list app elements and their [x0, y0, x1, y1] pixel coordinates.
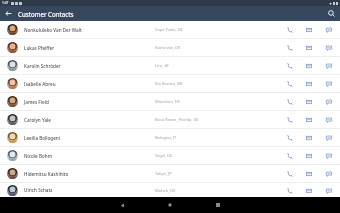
button[interactable]: Message: [323, 96, 334, 107]
button[interactable]: Search: [326, 8, 337, 19]
button[interactable]: Hidemitsu Kashihito: [0, 165, 340, 183]
button[interactable]: Call: [283, 168, 294, 179]
button[interactable]: Back: [111, 197, 133, 213]
staticText: Rio Branco, BR: [155, 81, 183, 86]
button[interactable]: Isabelle Abreu: [0, 75, 340, 93]
button[interactable]: Email: [303, 168, 314, 179]
staticText: Boca Raton, Florida, US: [155, 117, 199, 122]
button[interactable]: Call: [283, 60, 294, 71]
button[interactable]: Leeilla Bollogeni: [0, 129, 340, 147]
button[interactable]: Email: [303, 132, 314, 143]
button[interactable]: Lukas Pfeiffer: [0, 39, 340, 57]
button[interactable]: Email: [303, 96, 314, 107]
button[interactable]: Email: [303, 114, 314, 125]
staticText: Karlsruhe, DE: [155, 45, 181, 50]
staticText: Customer Contacts: [18, 10, 74, 18]
button[interactable]: Message: [323, 185, 334, 196]
staticText: Tokyo, JP: [155, 171, 172, 176]
staticText: Bologna, IT: [155, 135, 177, 140]
button[interactable]: Nicole Bohm: [0, 147, 340, 165]
button[interactable]: Call: [283, 24, 294, 35]
staticText: James Field: [24, 99, 49, 105]
button[interactable]: Email: [303, 150, 314, 161]
button[interactable]: Carolyn Yale: [0, 111, 340, 129]
staticText: Isabelle Abreu: [24, 81, 56, 87]
staticText: Leeilla Bollogeni: [24, 135, 60, 141]
staticText: Malsch, DE: [155, 188, 176, 193]
button[interactable]: Message: [323, 132, 334, 143]
button[interactable]: Message: [323, 168, 334, 179]
staticText: 1:47: [2, 1, 9, 5]
button[interactable]: Message: [323, 42, 334, 53]
button[interactable]: Call: [283, 78, 294, 89]
button[interactable]: Call: [283, 96, 294, 107]
staticText: Karolin Schröder: [24, 63, 61, 69]
button[interactable]: Message: [323, 114, 334, 125]
staticText: Lukas Pfeiffer: [24, 45, 55, 51]
button[interactable]: Call: [283, 150, 294, 161]
button[interactable]: Email: [303, 185, 314, 196]
button[interactable]: Email: [303, 60, 314, 71]
button[interactable]: Karolin Schröder: [0, 57, 340, 75]
button[interactable]: Call: [283, 132, 294, 143]
button[interactable]: Home: [159, 197, 181, 213]
staticText: Linz, AT: [155, 63, 170, 68]
button[interactable]: Message: [323, 78, 334, 89]
button[interactable]: Message: [323, 150, 334, 161]
staticText: München, DE: [155, 99, 180, 104]
button[interactable]: Call: [283, 42, 294, 53]
staticText: Tegel, DE: [155, 153, 173, 158]
staticText: Hidemitsu Kashihito: [24, 171, 69, 177]
button[interactable]: Message: [323, 24, 334, 35]
button[interactable]: Ulrich Schatz: [0, 183, 340, 197]
button[interactable]: Back: [3, 8, 14, 19]
button[interactable]: Nonkululeko Van Der Walt: [0, 21, 340, 39]
button[interactable]: Email: [303, 78, 314, 89]
staticText: Nicole Bohm: [24, 153, 52, 159]
button[interactable]: Email: [303, 24, 314, 35]
staticText: Ulrich Schatz: [24, 187, 53, 193]
button[interactable]: Email: [303, 42, 314, 53]
button[interactable]: Call: [283, 185, 294, 196]
button[interactable]: James Field: [0, 93, 340, 111]
button[interactable]: Recent apps: [207, 197, 229, 213]
button[interactable]: Message: [323, 60, 334, 71]
staticText: Nonkululeko Van Der Walt: [24, 27, 82, 33]
button[interactable]: Call: [283, 114, 294, 125]
staticText: Carolyn Yale: [24, 117, 51, 123]
staticText: Cape Town, ZA: [155, 27, 183, 32]
